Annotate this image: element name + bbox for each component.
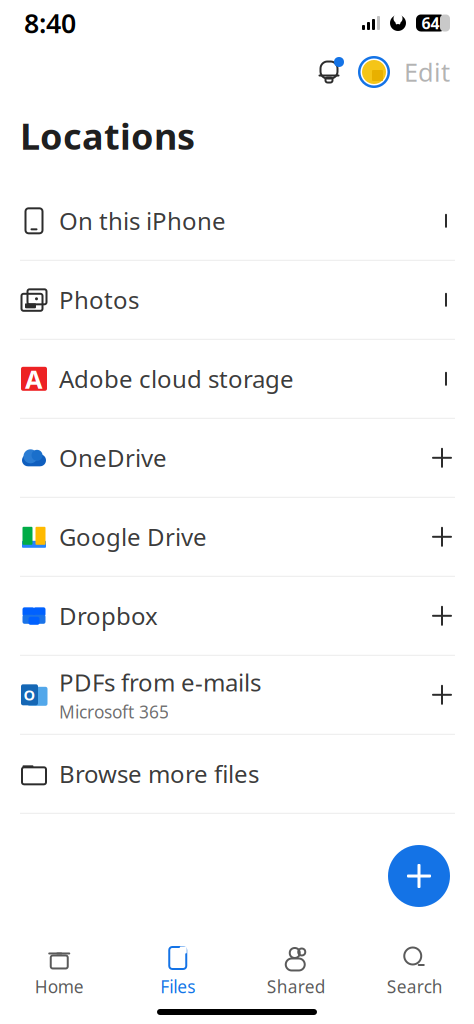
button[interactable]: Home <box>0 943 118 1001</box>
button[interactable]: Browse more files <box>0 735 474 814</box>
staticText: Files <box>160 975 195 998</box>
button[interactable]: Notifications <box>306 49 352 95</box>
staticText: OneDrive <box>59 442 167 474</box>
staticText: 8:40 <box>24 5 76 41</box>
button[interactable]: Photos <box>0 261 474 340</box>
button[interactable]: Files <box>118 943 237 1001</box>
staticText: Home <box>35 975 84 998</box>
button[interactable]: On this iPhone <box>0 182 474 261</box>
staticText: On this iPhone <box>59 205 226 237</box>
button[interactable]: Create <box>388 845 450 907</box>
staticText: Shared <box>267 975 326 998</box>
button[interactable]: Dropbox <box>0 577 474 656</box>
staticText: Microsoft 365 <box>59 700 169 723</box>
staticText: PDFs from e-mails <box>59 666 261 698</box>
staticText: Edit <box>404 55 450 89</box>
staticText: Search <box>387 975 443 998</box>
button[interactable]: Shared <box>237 943 355 1001</box>
button[interactable]: Search <box>355 943 474 1001</box>
button[interactable]: OneDrive <box>0 419 474 498</box>
button[interactable]: A <box>0 340 474 419</box>
button[interactable]: Google Drive <box>0 498 474 577</box>
staticText: Dropbox <box>59 600 158 632</box>
staticText: O <box>23 685 35 705</box>
button[interactable]: O <box>0 656 474 735</box>
button[interactable]: Edit <box>396 50 458 94</box>
staticText: 64 <box>421 12 439 34</box>
staticText: Locations <box>20 112 195 160</box>
staticText: Browse more files <box>59 758 259 790</box>
staticText: Adobe cloud storage <box>59 363 294 395</box>
staticText: Photos <box>59 284 139 316</box>
staticText: A <box>25 362 43 396</box>
staticText: Google Drive <box>59 521 207 553</box>
button[interactable]: Account <box>352 50 396 94</box>
